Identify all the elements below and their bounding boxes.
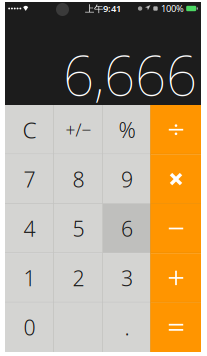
staticText: 100% bbox=[161, 2, 184, 15]
staticText: . bbox=[124, 313, 129, 341]
staticText: 6 bbox=[121, 214, 133, 243]
button[interactable]: 9 bbox=[103, 154, 151, 204]
staticText: 3 bbox=[121, 264, 133, 292]
staticText: 2 bbox=[72, 264, 84, 292]
button[interactable]: C bbox=[5, 105, 54, 154]
button[interactable]: Equals bbox=[151, 303, 201, 352]
staticText: 1 bbox=[23, 264, 35, 292]
button[interactable]: 5 bbox=[54, 204, 103, 253]
staticText: +/− bbox=[65, 118, 91, 141]
staticText: % bbox=[118, 115, 135, 144]
button[interactable]: % bbox=[103, 105, 151, 154]
staticText: C bbox=[22, 115, 36, 145]
button[interactable]: 0 bbox=[5, 303, 103, 352]
button[interactable]: 3 bbox=[103, 253, 151, 303]
button[interactable]: Add bbox=[151, 253, 201, 303]
staticText: 8 bbox=[72, 165, 84, 193]
staticText: 上午9:41 bbox=[85, 2, 121, 15]
staticText: 6,666 bbox=[63, 38, 197, 111]
button[interactable]: . bbox=[103, 303, 151, 352]
staticText: 9 bbox=[121, 165, 133, 193]
staticText: 5 bbox=[72, 214, 84, 243]
staticText: 0 bbox=[23, 313, 35, 341]
button[interactable]: +/− bbox=[54, 105, 103, 154]
button[interactable]: 2 bbox=[54, 253, 103, 303]
staticText: 7 bbox=[23, 165, 35, 193]
staticText: 4 bbox=[23, 214, 35, 243]
button[interactable]: Multiply bbox=[151, 154, 201, 204]
button[interactable]: 1 bbox=[5, 253, 54, 303]
button[interactable]: 6 bbox=[103, 204, 151, 253]
button[interactable]: 4 bbox=[5, 204, 54, 253]
button[interactable]: 7 bbox=[5, 154, 54, 204]
button[interactable]: Divide bbox=[151, 105, 201, 154]
button[interactable]: Subtract bbox=[151, 204, 201, 253]
button[interactable]: 8 bbox=[54, 154, 103, 204]
